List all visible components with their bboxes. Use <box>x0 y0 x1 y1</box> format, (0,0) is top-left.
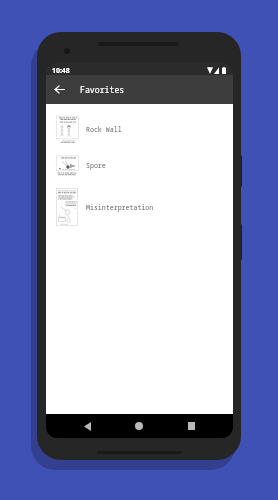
button[interactable]: Misinterpretation <box>46 182 233 232</box>
button[interactable]: Spore <box>46 149 233 182</box>
button[interactable]: Back <box>46 75 72 104</box>
button[interactable]: Rock Wall <box>46 109 233 149</box>
staticText: Rock Wall <box>86 125 122 134</box>
button[interactable]: Recent apps <box>177 414 205 438</box>
staticText: 10:48 <box>52 66 70 75</box>
staticText: Misinterpretation <box>86 203 154 212</box>
button[interactable]: Home <box>125 414 153 438</box>
staticText: Spore <box>86 161 106 170</box>
staticText: Favorites <box>80 84 125 95</box>
button[interactable]: Back <box>73 414 101 438</box>
